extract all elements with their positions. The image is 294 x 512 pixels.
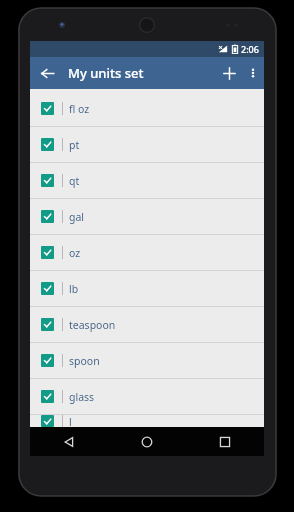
button[interactable]: glass — [30, 379, 264, 415]
button[interactable]: Add unit — [216, 60, 242, 86]
staticText: fl oz — [69, 102, 90, 116]
staticText: spoon — [69, 354, 100, 368]
button[interactable]: spoon — [30, 343, 264, 379]
button[interactable]: oz — [30, 235, 264, 271]
button[interactable]: More options — [242, 62, 264, 84]
button[interactable]: Home — [108, 427, 186, 456]
button[interactable]: l — [30, 415, 264, 427]
button[interactable]: lb — [30, 271, 264, 307]
staticText: oz — [69, 246, 81, 260]
button[interactable]: Back — [30, 427, 108, 456]
staticText: My units set — [68, 64, 144, 82]
button[interactable]: gal — [30, 199, 264, 235]
staticText: glass — [69, 390, 95, 404]
staticText: gal — [69, 210, 85, 224]
staticText: lb — [69, 282, 79, 296]
button[interactable]: teaspoon — [30, 307, 264, 343]
staticText: l — [69, 415, 72, 427]
button[interactable]: pt — [30, 127, 264, 163]
button[interactable]: qt — [30, 163, 264, 199]
staticText: qt — [69, 174, 80, 188]
button[interactable]: Navigate up — [34, 60, 60, 86]
button[interactable]: fl oz — [30, 91, 264, 127]
button[interactable]: Recent apps — [186, 427, 264, 456]
staticText: 2:06 — [241, 43, 259, 55]
staticText: pt — [69, 138, 80, 152]
staticText: teaspoon — [69, 318, 116, 332]
